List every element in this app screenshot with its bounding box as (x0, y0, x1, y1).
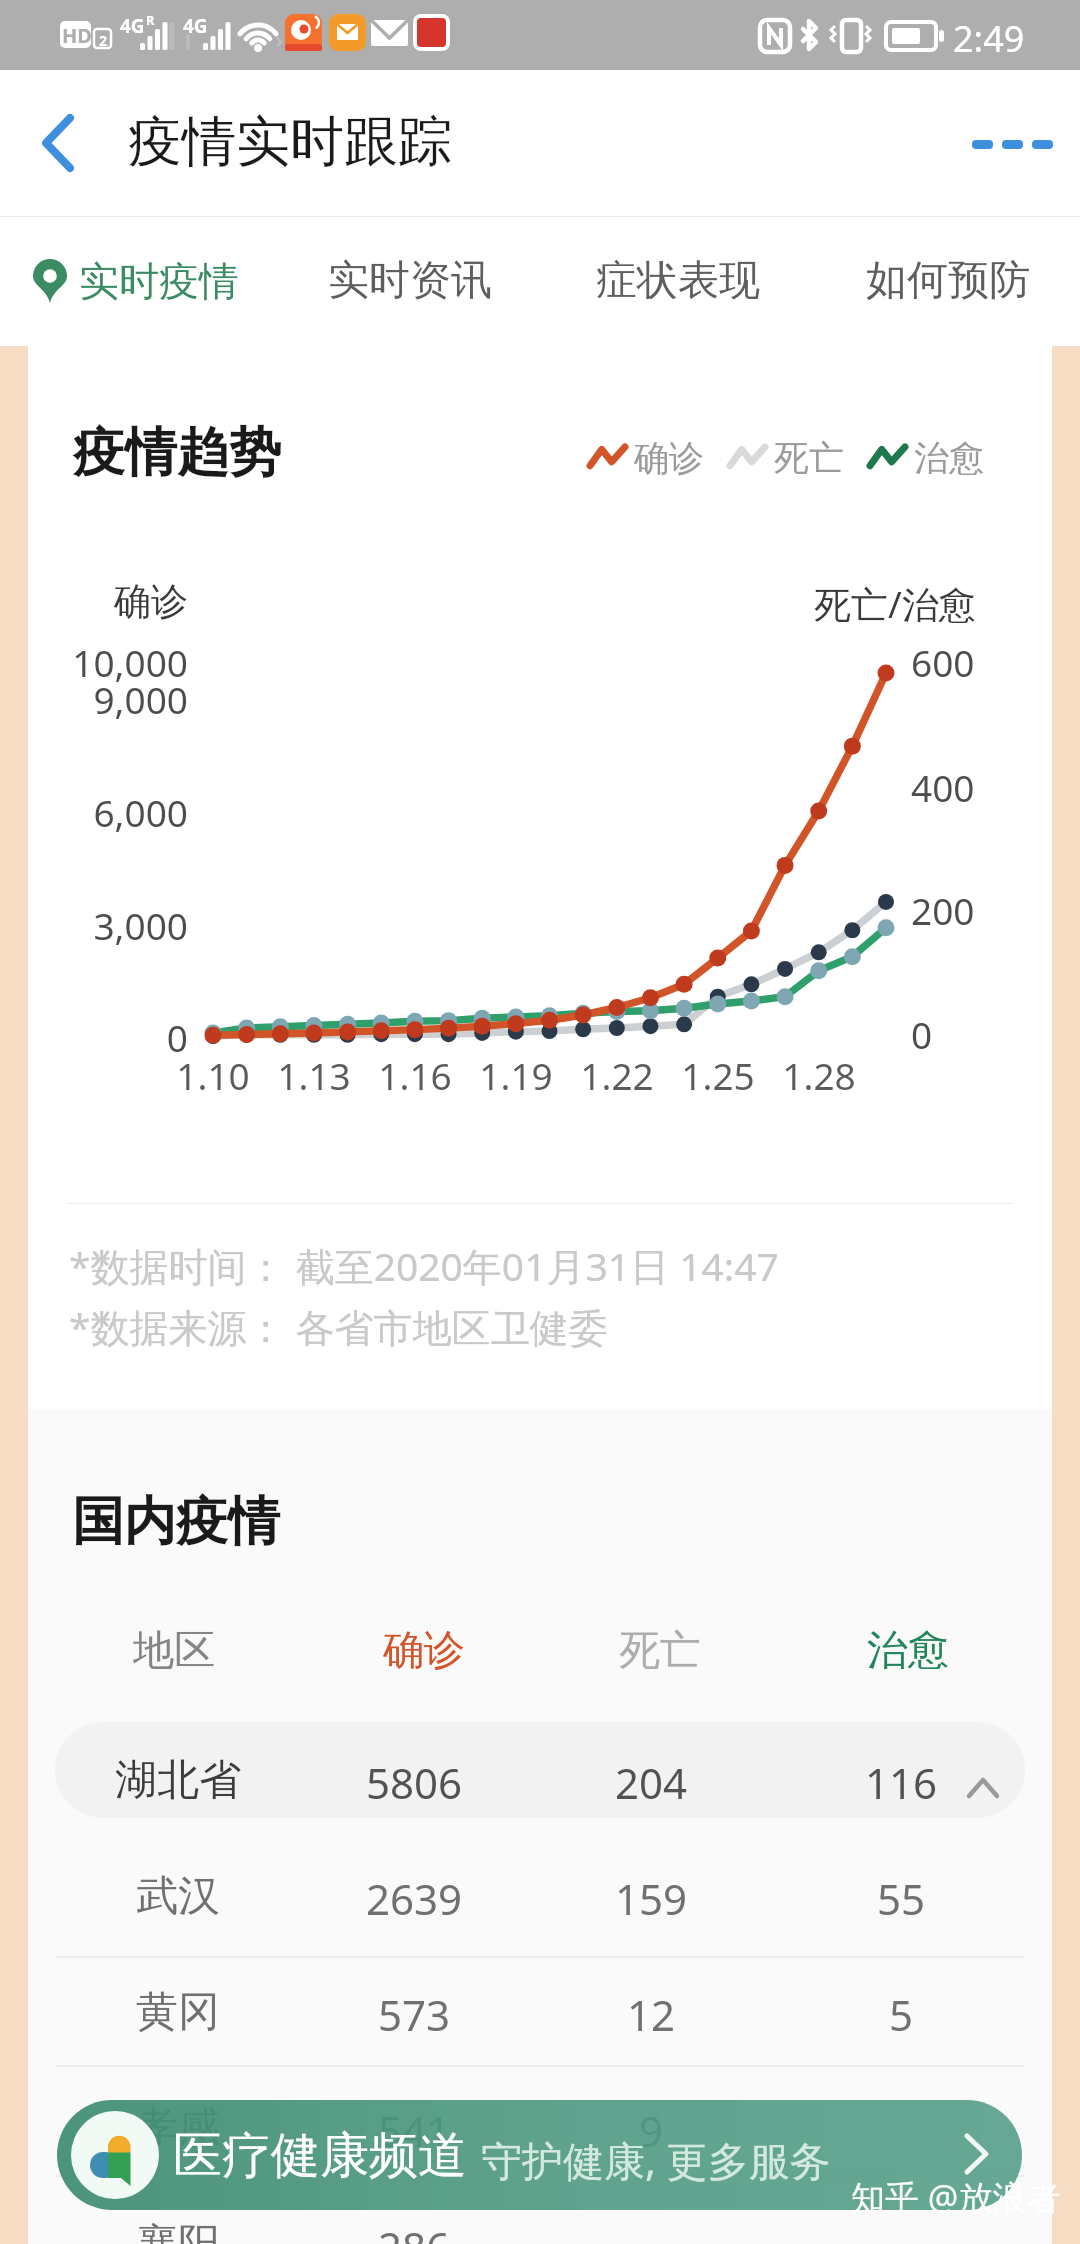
staticText: 武汉 (53, 1870, 303, 1923)
staticText: 黄冈 (53, 1986, 303, 2039)
staticText: 医疗健康频道 (173, 2125, 467, 2187)
staticText: 573 (289, 1986, 539, 2043)
staticText: 55 (776, 1870, 1026, 1927)
staticText: 2639 (289, 1870, 539, 1927)
staticText: 国内疫情 (72, 1489, 280, 1555)
button[interactable]: 如何预防 (833, 216, 1063, 346)
staticText: 5806 (289, 1754, 539, 1811)
staticText: 1.25 (648, 1050, 788, 1100)
staticText: 实时资讯 (328, 255, 492, 307)
staticText: 5 (776, 1986, 1026, 2043)
staticText: 200 (911, 885, 975, 935)
button[interactable]: 实时资讯 (295, 216, 525, 346)
staticText: 死亡/治愈 (814, 578, 976, 629)
staticText: 知乎 @放浪者 (851, 2174, 1061, 2220)
staticText: 死亡 (774, 436, 844, 480)
button[interactable] (28, 1838, 1052, 1952)
staticText: HD (62, 22, 92, 49)
staticText: 襄阳 (53, 2218, 303, 2244)
staticText: 1.28 (749, 1050, 889, 1100)
staticText: 如何预防 (866, 255, 1030, 307)
staticText: 204 (526, 1754, 776, 1811)
button[interactable] (55, 1722, 1025, 1818)
staticText: 1.10 (143, 1050, 283, 1100)
staticText: 孝感 (53, 2102, 303, 2155)
button[interactable]: Back (0, 88, 106, 198)
staticText: 541 (289, 2102, 539, 2159)
staticText: 0 (28, 1012, 188, 1062)
button[interactable] (28, 2186, 1052, 2244)
button[interactable]: More options (950, 88, 1080, 198)
staticText: 确诊 (114, 578, 188, 625)
staticText: 1.22 (547, 1050, 687, 1100)
staticText: 湖北省 (53, 1754, 303, 1807)
staticText: 疫情实时跟踪 (128, 108, 452, 176)
staticText: 死亡 (535, 1625, 785, 1677)
staticText: 0 (911, 1009, 933, 1059)
button[interactable]: 医疗健康频道 (57, 2100, 1022, 2210)
staticText: R (146, 11, 155, 29)
staticText: 确诊 (299, 1625, 549, 1677)
staticText: 2:49 (953, 14, 1025, 63)
staticText: 1.13 (244, 1050, 384, 1100)
staticText: 地区 (49, 1625, 299, 1677)
staticText: 10,000 (28, 637, 188, 687)
staticText: 治愈 (914, 436, 984, 480)
button[interactable] (28, 1954, 1052, 2068)
staticText: 1.16 (345, 1050, 485, 1100)
staticText: 12 (526, 1986, 776, 2043)
staticText: 159 (526, 1870, 776, 1927)
staticText: 守护健康, 更多服务 (481, 2132, 831, 2188)
staticText: 1.19 (446, 1050, 586, 1100)
staticText: 600 (911, 637, 975, 687)
button[interactable]: 症状表现 (563, 216, 793, 346)
staticText: 116 (776, 1754, 1026, 1811)
staticText: 9 (526, 2102, 776, 2159)
staticText: 3,000 (28, 900, 188, 950)
staticText: 400 (911, 762, 975, 812)
staticText: 确诊 (634, 436, 704, 480)
staticText: 6,000 (28, 787, 188, 837)
staticText: 实时疫情 (79, 256, 239, 306)
staticText: 9,000 (28, 674, 188, 724)
staticText: 2 (99, 31, 108, 50)
staticText: *数据来源： 各省市地区卫健委 (69, 1300, 608, 1353)
staticText: *数据时间： 截至2020年01月31日 14:47 (69, 1239, 779, 1292)
staticText: 4G (183, 13, 208, 39)
staticText: 4G (120, 13, 145, 39)
staticText: 症状表现 (596, 255, 760, 307)
staticText: 治愈 (783, 1625, 1033, 1677)
staticText: 疫情趋势 (73, 420, 281, 486)
button[interactable] (28, 2070, 1052, 2184)
staticText: 286 (289, 2218, 539, 2244)
button[interactable]: 实时疫情 (18, 216, 294, 346)
